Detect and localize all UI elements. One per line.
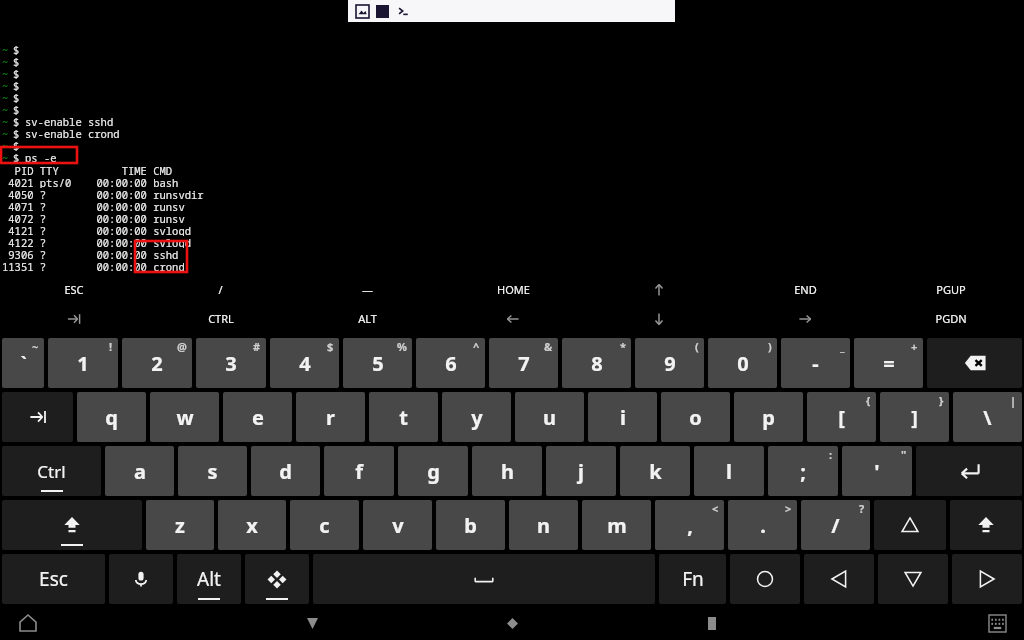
button[interactable]: o <box>661 392 730 442</box>
button[interactable]: Symbols <box>245 554 309 604</box>
button[interactable]: Esc <box>2 554 105 604</box>
button[interactable]: a <box>105 446 174 496</box>
button[interactable]: 7 <box>489 338 558 388</box>
button[interactable]: Terminal <box>396 4 410 18</box>
button[interactable]: CTRL <box>147 304 294 333</box>
button[interactable]: m <box>582 500 651 550</box>
button[interactable]: ; <box>768 446 838 496</box>
button[interactable]: q <box>77 392 146 442</box>
button[interactable]: Home <box>730 554 800 604</box>
button[interactable]: Home <box>497 608 527 638</box>
button[interactable]: Shift <box>2 500 142 550</box>
button[interactable]: / <box>147 275 294 304</box>
button[interactable]: l <box>694 446 764 496</box>
button[interactable]: = <box>854 338 923 388</box>
button[interactable]: z <box>146 500 214 550</box>
button[interactable]: Backspace <box>927 338 1022 388</box>
button[interactable]: Home app <box>18 613 38 633</box>
button[interactable]: Right <box>732 304 878 333</box>
button[interactable]: 2 <box>122 338 192 388</box>
button[interactable]: p <box>734 392 803 442</box>
button[interactable]: y <box>442 392 511 442</box>
button[interactable]: e <box>223 392 292 442</box>
staticText: ~ <box>2 43 9 55</box>
button[interactable]: — <box>294 275 440 304</box>
staticText: $ <box>13 151 20 163</box>
button[interactable]: Down <box>878 554 948 604</box>
button[interactable]: . <box>728 500 797 550</box>
button[interactable]: r <box>296 392 365 442</box>
button[interactable]: 3 <box>196 338 266 388</box>
staticText: f <box>355 458 363 485</box>
staticText: ( <box>695 339 699 354</box>
button[interactable]: t <box>369 392 438 442</box>
button[interactable]: w <box>150 392 219 442</box>
staticText: 9 <box>664 350 676 377</box>
button[interactable]: Space <box>313 554 655 604</box>
button[interactable]: n <box>509 500 578 550</box>
button[interactable]: u <box>515 392 584 442</box>
button[interactable]: , <box>655 500 724 550</box>
button[interactable]: h <box>472 446 542 496</box>
button[interactable]: j <box>546 446 616 496</box>
button[interactable]: ] <box>880 392 949 442</box>
button[interactable]: PGDN <box>878 304 1024 333</box>
button[interactable]: d <box>251 446 320 496</box>
button[interactable]: g <box>398 446 468 496</box>
staticText: Alt <box>197 566 221 592</box>
staticText: Ctrl <box>37 460 66 483</box>
staticText: r <box>326 404 335 431</box>
button[interactable]: Right <box>952 554 1022 604</box>
button[interactable]: Up <box>586 275 732 304</box>
button[interactable]: ' <box>842 446 912 496</box>
button[interactable]: c <box>290 500 359 550</box>
button[interactable]: Shift <box>950 500 1022 550</box>
button[interactable]: 5 <box>343 338 412 388</box>
button[interactable]: ESC <box>0 275 147 304</box>
button[interactable]: 4 <box>270 338 339 388</box>
staticText: $ <box>13 127 20 139</box>
staticText: j <box>578 458 584 485</box>
button[interactable]: 8 <box>562 338 631 388</box>
button[interactable]: Alt <box>177 554 241 604</box>
button[interactable]: [ <box>807 392 876 442</box>
button[interactable]: x <box>218 500 286 550</box>
button[interactable]: s <box>178 446 247 496</box>
button[interactable]: Keyboard <box>986 612 1008 634</box>
button[interactable]: Up <box>874 500 946 550</box>
button[interactable]: f <box>324 446 394 496</box>
button[interactable]: HOME <box>440 275 586 304</box>
staticText: 6 <box>445 350 457 377</box>
button[interactable]: Tab <box>2 392 73 442</box>
button[interactable]: i <box>588 392 657 442</box>
button[interactable]: Back <box>297 608 327 638</box>
button[interactable]: Tab <box>0 304 147 333</box>
staticText: ~ <box>2 127 9 139</box>
button[interactable]: - <box>781 338 850 388</box>
button[interactable]: Left <box>804 554 874 604</box>
button[interactable]: Fn <box>659 554 726 604</box>
button[interactable]: Recents <box>697 608 727 638</box>
button[interactable]: / <box>801 500 870 550</box>
button[interactable]: k <box>620 446 690 496</box>
button[interactable]: END <box>732 275 878 304</box>
button[interactable]: \ <box>953 392 1022 442</box>
button[interactable]: b <box>436 500 505 550</box>
button[interactable]: Down <box>586 304 732 333</box>
staticText: t <box>399 404 408 431</box>
button[interactable]: 9 <box>635 338 704 388</box>
staticText: $ <box>13 139 20 151</box>
button[interactable]: 0 <box>708 338 777 388</box>
button[interactable]: 1 <box>48 338 118 388</box>
button[interactable]: ` <box>2 338 44 388</box>
button[interactable]: PGUP <box>878 275 1024 304</box>
button[interactable]: v <box>363 500 432 550</box>
button[interactable]: Voice input <box>109 554 173 604</box>
button[interactable]: Gallery <box>356 5 369 18</box>
button[interactable]: Ctrl <box>2 446 101 496</box>
button[interactable]: 6 <box>416 338 485 388</box>
button[interactable]: Left <box>440 304 586 333</box>
button[interactable]: Enter <box>916 446 1022 496</box>
button[interactable]: ALT <box>294 304 440 333</box>
